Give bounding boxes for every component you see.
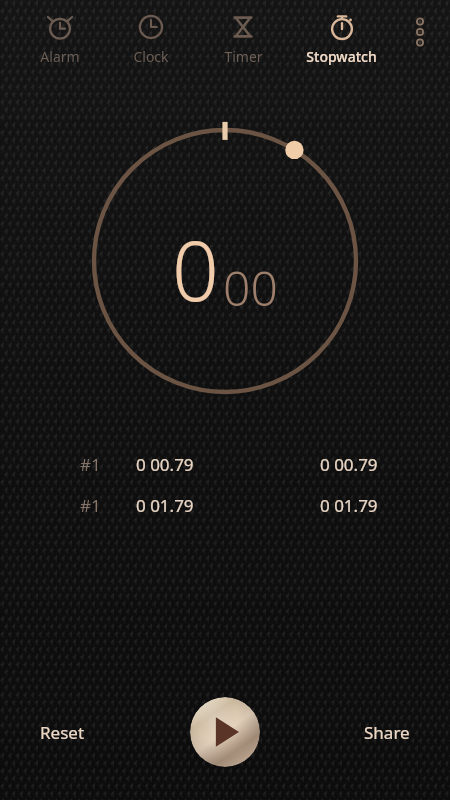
staticText: 0 [172,213,219,325]
staticText: Timer [224,47,263,66]
staticText: Share [364,721,410,744]
staticText: Stopwatch [306,47,377,66]
staticText: 00 [223,255,278,320]
staticText: 0 00.79 [320,453,378,476]
staticText: 0 01.79 [320,494,378,517]
staticText: #1 [80,494,101,517]
button[interactable]: Reset [26,711,99,754]
button[interactable]: Timer [197,0,289,66]
button[interactable]: Alarm [14,0,105,66]
button[interactable]: #1 [0,485,450,526]
button[interactable]: Clock [105,0,197,66]
button[interactable]: Start [190,697,260,767]
button[interactable]: Share [350,711,424,754]
staticText: 0 01.79 [136,494,194,517]
staticText: #1 [80,453,101,476]
staticText: Clock [133,47,169,66]
button[interactable]: #1 [0,444,450,485]
staticText: Alarm [40,47,80,66]
button[interactable]: More options [400,16,440,56]
button[interactable]: Stopwatch [289,0,394,66]
staticText: 0 00.79 [136,453,194,476]
staticText: Reset [40,721,85,744]
